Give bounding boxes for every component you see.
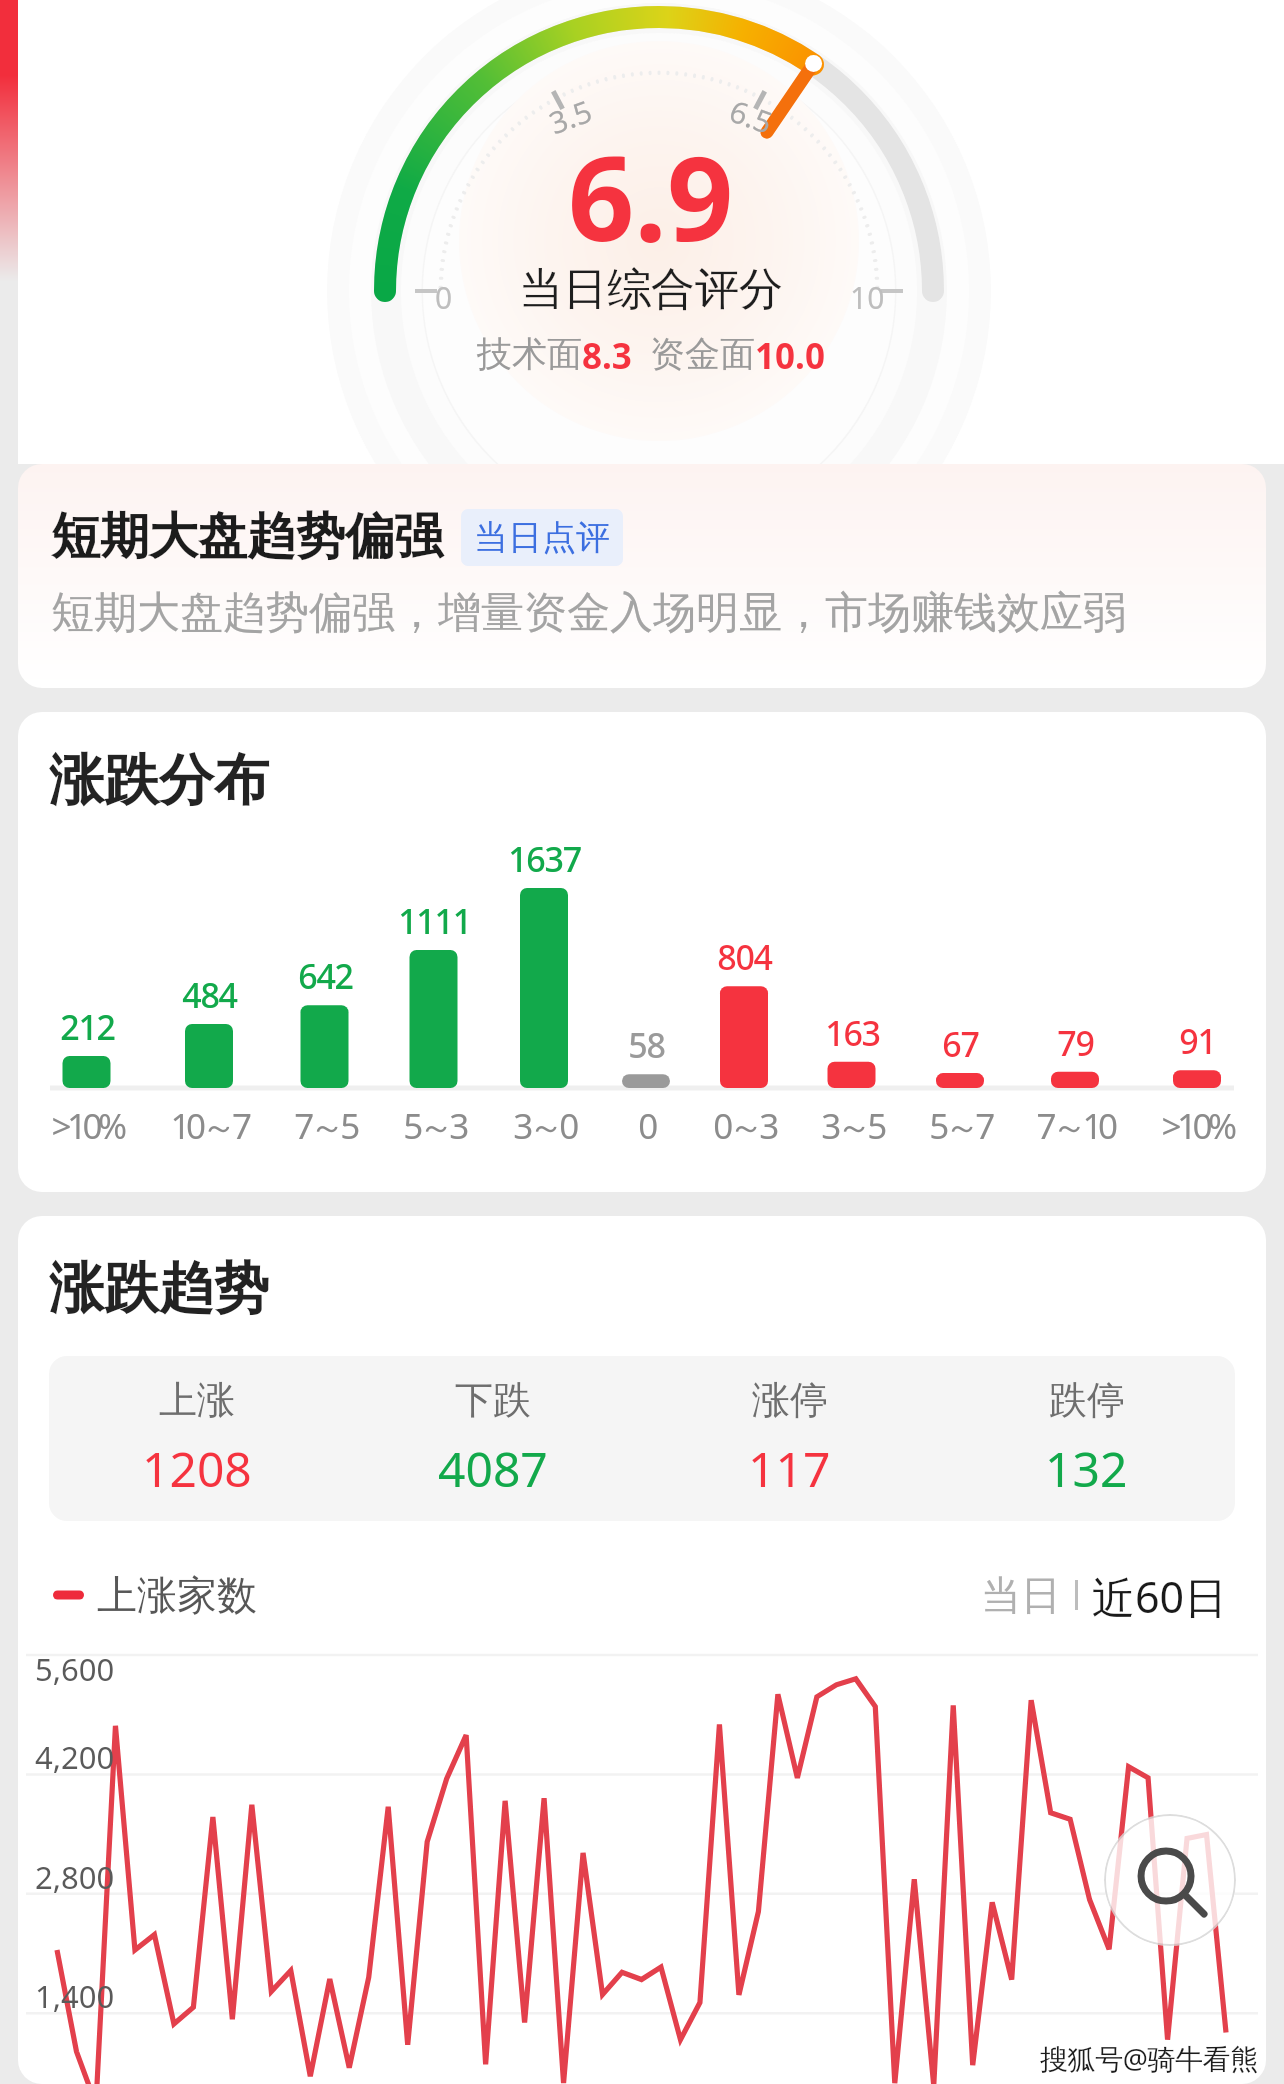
staticText: 短期大盘趋势偏强，增量资金入场明显，市场赚钱效应弱 [51,586,1126,640]
button[interactable]: 近60日 [1092,1567,1228,1623]
staticText: 5,600 [35,1648,115,1690]
staticText: 下跌 [455,1376,531,1424]
button[interactable]: 当日 [981,1570,1061,1620]
staticText: 6.9 [568,117,734,275]
button[interactable]: 涨停 [641,1376,938,1501]
staticText: 212 [60,1004,115,1050]
staticText: 当日点评 [474,516,610,559]
staticText: 资金面 [650,332,755,376]
staticText: 79 [1057,1020,1094,1066]
staticText: 3～0 [513,1102,575,1150]
staticText: 163 [825,1010,880,1056]
staticText: 7～5 [294,1102,356,1150]
staticText: 6.5 [724,90,779,143]
staticText: 3.5 [543,90,598,143]
staticText: >10% [51,1102,123,1150]
staticText: 2,800 [35,1856,115,1898]
staticText: 58 [628,1022,665,1068]
staticText: 当日综合评分 [519,262,783,317]
staticText: 1637 [508,836,581,882]
staticText: 3～5 [821,1102,883,1150]
staticText: 10 [850,277,885,318]
button[interactable]: 上涨 [49,1376,345,1501]
staticText: 涨跌趋势 [49,1254,269,1323]
staticText: 0 [435,277,453,318]
staticText: 5～3 [403,1102,465,1150]
button[interactable]: 短期大盘趋势偏强 [18,464,1266,688]
button[interactable]: 下跌 [345,1376,641,1501]
staticText: 0～3 [713,1102,775,1150]
staticText: 91 [1179,1018,1216,1064]
staticText: 642 [298,953,353,999]
staticText: 5～7 [929,1102,991,1150]
staticText: 7～10 [1036,1102,1114,1150]
staticText: 10.0 [755,332,825,380]
staticText: 涨跌分布 [49,746,269,815]
button[interactable]: Zoom chart [1104,1814,1236,1946]
staticText: >10% [1161,1102,1233,1150]
button[interactable]: 跌停 [938,1376,1235,1501]
staticText: 8.3 [582,332,632,380]
staticText: 132 [1045,1436,1128,1501]
staticText: 上涨 [159,1376,235,1424]
staticText: 搜狐号@骑牛看熊 [1040,2039,1258,2077]
staticText: 0 [638,1102,654,1150]
staticText: 上涨家数 [97,1570,257,1620]
staticText: 技术面 [477,332,582,376]
staticText: 484 [182,972,237,1018]
staticText: 跌停 [1049,1376,1125,1424]
staticText: 涨停 [752,1376,828,1424]
staticText: 短期大盘趋势偏强 [51,506,443,568]
staticText: 1111 [398,898,471,944]
staticText: 1208 [142,1436,252,1501]
staticText: 1,400 [35,1975,115,2017]
staticText: 117 [748,1436,831,1501]
staticText: 804 [717,934,772,980]
staticText: 67 [942,1021,979,1067]
staticText: 10～7 [170,1102,248,1150]
staticText: 4,200 [35,1736,115,1778]
staticText: 4087 [438,1436,548,1501]
